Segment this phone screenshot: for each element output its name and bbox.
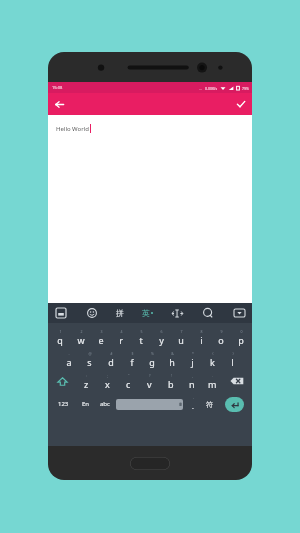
button[interactable]: 7 [171, 326, 191, 348]
button[interactable]: & [162, 348, 182, 370]
button[interactable]: En [76, 392, 95, 416]
staticText: 8 [200, 329, 203, 334]
staticText: ( [212, 351, 214, 356]
staticText: r [119, 334, 123, 346]
staticText: * [192, 351, 194, 356]
staticText: 7 [180, 329, 183, 334]
staticText: 英 [142, 308, 150, 318]
staticText: o [218, 334, 224, 346]
staticText: h [169, 356, 175, 368]
button[interactable]: Back [48, 93, 70, 115]
staticText: & [171, 351, 174, 356]
staticText: f [130, 356, 134, 368]
button[interactable]: 英 [142, 306, 153, 320]
button[interactable]: ; [97, 370, 118, 392]
button[interactable]: abc [95, 392, 114, 416]
button[interactable]: ( [202, 348, 222, 370]
button[interactable]: - [58, 348, 79, 370]
staticText: y [159, 334, 164, 346]
staticText: 符 [206, 400, 213, 409]
button[interactable]: Save [230, 93, 252, 115]
staticText: g [149, 356, 155, 368]
staticText: En [82, 400, 90, 408]
button[interactable]: " [118, 370, 139, 392]
button[interactable]: . [202, 370, 223, 392]
button[interactable]: $ [121, 348, 142, 370]
staticText: a [66, 356, 72, 368]
staticText: 123 [58, 400, 69, 408]
staticText: k [210, 356, 215, 368]
staticText: 5 [140, 329, 143, 334]
button[interactable]: Search [201, 306, 215, 320]
staticText: b [168, 378, 174, 390]
staticText: m [208, 378, 217, 390]
staticText: 6 [160, 329, 163, 334]
button[interactable]: @ [79, 348, 100, 370]
staticText: ? [149, 373, 151, 378]
button[interactable]: % [142, 348, 162, 370]
button[interactable]: Space [116, 399, 183, 410]
button[interactable]: , [181, 370, 202, 392]
staticText: % [151, 351, 154, 356]
button[interactable]: 0 [231, 326, 251, 348]
staticText: 2 [80, 329, 83, 334]
staticText: ! [171, 373, 172, 378]
button[interactable]: Move cursor [170, 306, 184, 320]
staticText: z [84, 378, 89, 390]
staticText: ... [199, 86, 203, 91]
staticText: n [189, 378, 195, 390]
button[interactable]: 3 [91, 326, 111, 348]
staticText: 15:08 [52, 85, 63, 90]
staticText: 4 [120, 329, 123, 334]
staticText: abc [100, 400, 110, 408]
staticText: . [212, 373, 213, 378]
button[interactable]: Hide keyboard [232, 306, 246, 320]
staticText: $ [131, 351, 134, 356]
staticText: , [192, 373, 193, 378]
button[interactable]: Emoji [85, 306, 99, 320]
button[interactable]: ! [160, 370, 181, 392]
staticText: s [87, 356, 92, 368]
staticText: i [200, 334, 203, 346]
button[interactable]: Theme [54, 306, 68, 320]
button[interactable]: 5 [131, 326, 151, 348]
staticText: ; [107, 373, 108, 378]
button[interactable]: 8 [191, 326, 211, 348]
staticText: v [147, 378, 152, 390]
staticText: d [108, 356, 114, 368]
button[interactable]: 1 [49, 326, 70, 348]
staticText: - [68, 351, 70, 356]
button[interactable]: ) [222, 348, 242, 370]
button[interactable]: 4 [111, 326, 131, 348]
staticText: ' [193, 397, 194, 402]
button[interactable]: 6 [151, 326, 171, 348]
button[interactable]: 拼 [116, 306, 124, 320]
staticText: : [86, 373, 87, 378]
button[interactable]: 2 [70, 326, 91, 348]
button[interactable]: 123 [51, 392, 76, 416]
staticText: ) [232, 351, 234, 356]
button[interactable]: # [100, 348, 121, 370]
button[interactable]: * [182, 348, 202, 370]
staticText: 9 [220, 329, 223, 334]
staticText: 1 [59, 329, 62, 334]
button[interactable]: ' [185, 392, 200, 416]
button[interactable]: Home [130, 457, 170, 470]
button[interactable]: ? [139, 370, 160, 392]
staticText: c [126, 378, 131, 390]
staticText: 79% [242, 86, 249, 91]
button[interactable]: 符 [200, 392, 219, 416]
button[interactable]: Backspace [223, 370, 251, 392]
button[interactable]: Enter [225, 397, 244, 412]
button[interactable]: Shift [49, 370, 76, 392]
staticText: 0.00K/s [205, 86, 218, 91]
staticText: u [178, 334, 184, 346]
button[interactable]: 9 [211, 326, 231, 348]
staticText: l [231, 356, 234, 368]
staticText: 拼 [116, 308, 124, 318]
staticText: # [110, 351, 113, 356]
staticText: j [191, 356, 194, 368]
staticText: e [98, 334, 104, 346]
button[interactable]: : [76, 370, 97, 392]
staticText: t [139, 334, 143, 346]
